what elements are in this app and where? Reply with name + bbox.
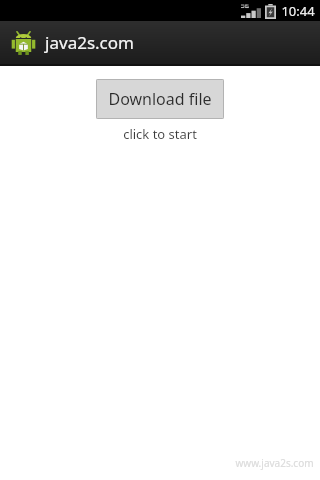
- staticText: Download file: [108, 88, 212, 110]
- button[interactable]: Download file: [96, 79, 224, 119]
- staticText: click to start: [123, 125, 197, 143]
- staticText: 10:44: [281, 2, 315, 20]
- staticText: java2s.com: [45, 31, 134, 54]
- staticText: www.java2s.com: [235, 456, 314, 470]
